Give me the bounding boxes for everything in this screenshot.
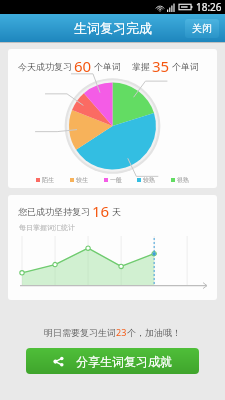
staticText: 个，加油哦！ <box>127 327 181 338</box>
staticText: 陌生 <box>42 176 54 184</box>
staticText: 每日掌握词汇统计 <box>19 223 75 232</box>
staticText: 一般 <box>110 176 122 184</box>
button[interactable]: 分享 <box>26 348 199 374</box>
staticText: 个单词 <box>94 61 121 72</box>
staticText: 分享生词复习成就 <box>76 354 172 369</box>
staticText: 明日需要复习生词 <box>44 327 116 338</box>
staticText: 60 <box>74 56 92 76</box>
staticText: 今天成功复习 <box>18 61 72 72</box>
staticText: 生词复习完成 <box>74 20 152 36</box>
staticText: 天 <box>112 206 121 217</box>
staticText: 18:26 <box>196 0 222 14</box>
staticText: 23 <box>116 326 127 338</box>
staticText: 16 <box>92 201 110 221</box>
staticText: 很熟 <box>177 176 189 184</box>
staticText: 关闭 <box>192 22 212 35</box>
other: 分享 <box>53 356 64 367</box>
staticText: 掌握 <box>132 61 150 72</box>
staticText: 35 <box>152 56 170 76</box>
staticText: 您已成功坚持复习 <box>18 206 90 217</box>
staticText: 较熟 <box>143 176 155 184</box>
staticText: 个单词 <box>172 61 199 72</box>
staticText: 较生 <box>76 176 88 184</box>
button[interactable]: 关闭 <box>185 19 219 38</box>
